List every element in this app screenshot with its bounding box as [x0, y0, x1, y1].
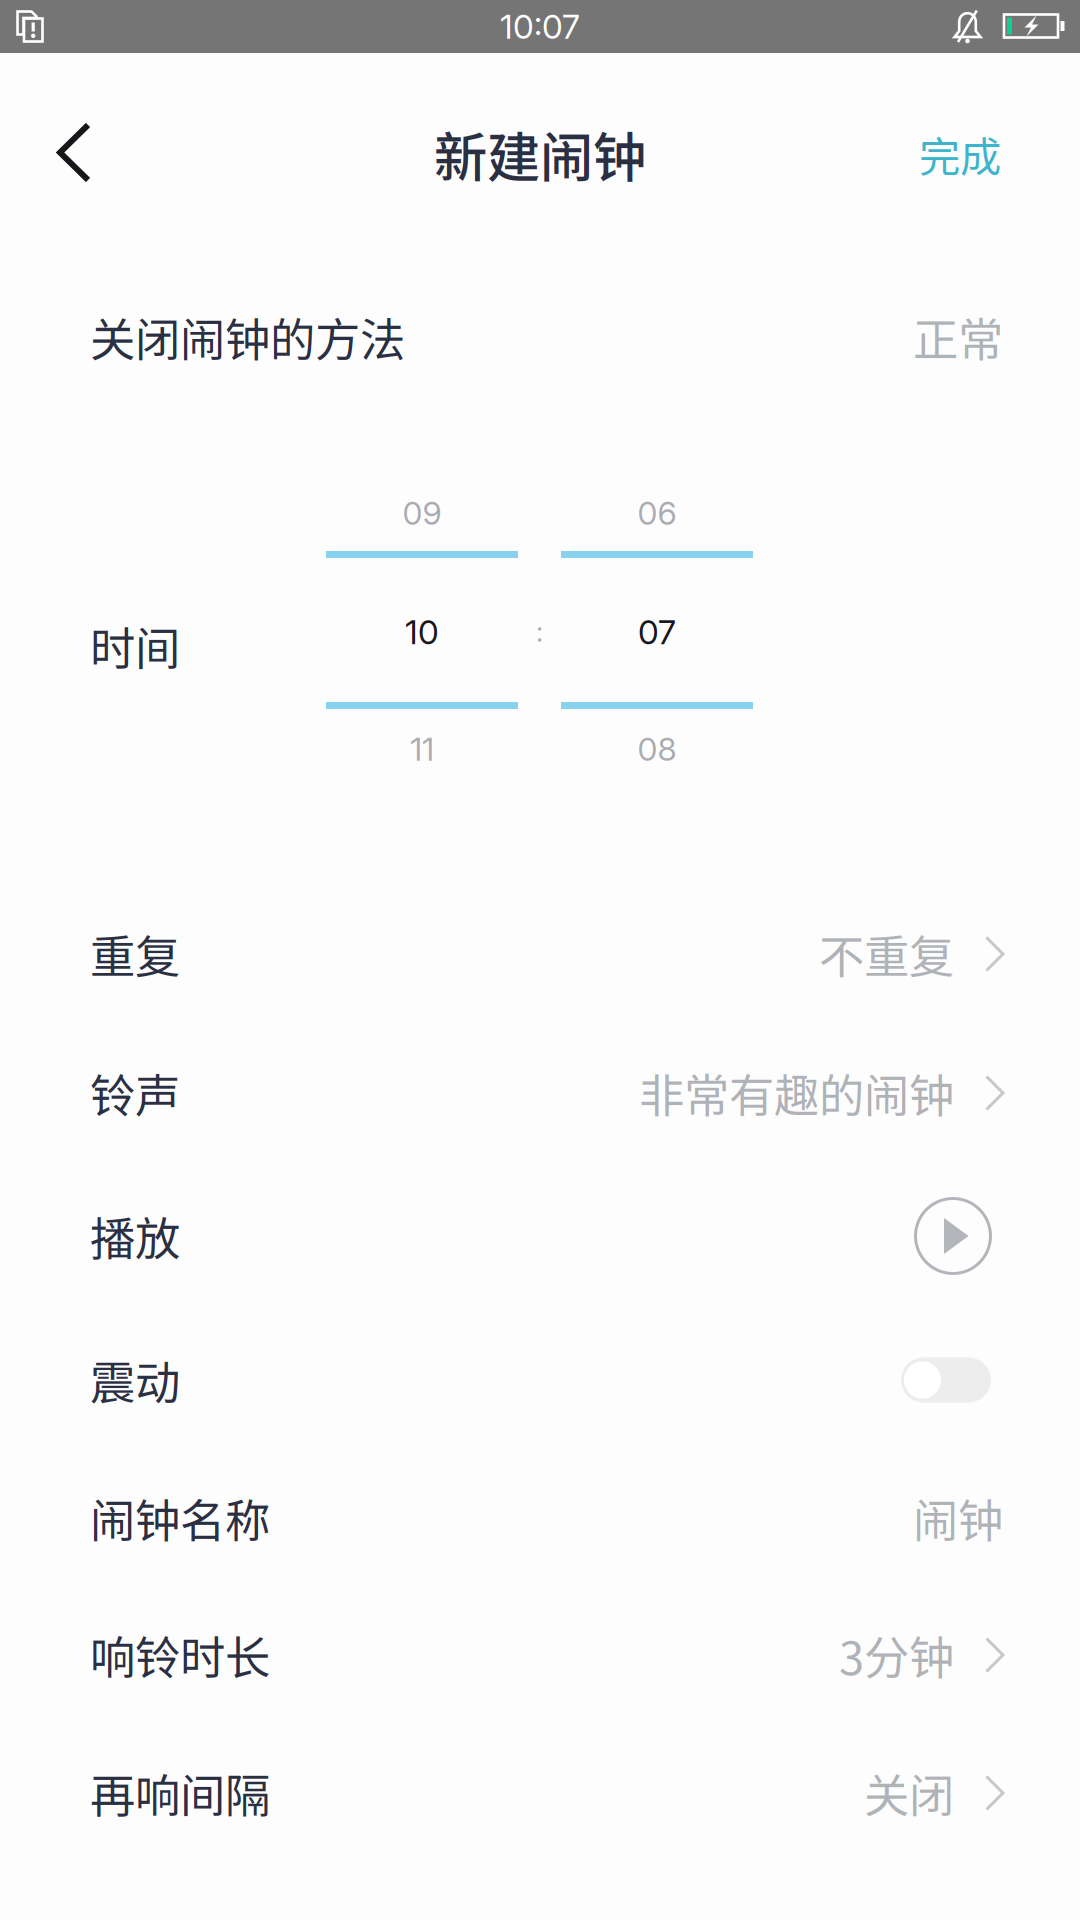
- button[interactable]: 重复: [0, 0, 1080, 138]
- button[interactable]: 响铃时长: [0, 0, 1080, 138]
- staticText: 非常有趣的闹钟: [639, 1060, 954, 1126]
- staticText: 铃声: [90, 1060, 180, 1126]
- staticText: 响铃时长: [90, 1622, 270, 1688]
- staticText: 完成: [919, 124, 1001, 184]
- button[interactable]: Play: [0, 0, 100, 100]
- staticText: 10:07: [500, 6, 580, 47]
- staticText: 播放: [90, 1203, 180, 1269]
- staticText: 关闭: [864, 1760, 954, 1826]
- staticText: 重复: [90, 921, 180, 987]
- button[interactable]: 完成: [0, 0, 200, 120]
- staticText: 11: [410, 730, 434, 768]
- staticText: 06: [637, 494, 676, 532]
- staticText: 正常: [913, 304, 1003, 370]
- staticText: 震动: [90, 1347, 180, 1413]
- button[interactable]: Minute: [0, 0, 192, 300]
- staticText: 3分钟: [839, 1622, 954, 1688]
- button[interactable]: 铃声: [0, 0, 1080, 138]
- staticText: 08: [637, 730, 676, 768]
- staticText: 关闭闹钟的方法: [90, 304, 405, 370]
- staticText: 09: [402, 494, 441, 532]
- button[interactable]: 再响间隔: [0, 0, 1080, 138]
- button[interactable]: Vibration, off: [0, 0, 120, 72]
- button[interactable]: Hour: [0, 0, 192, 300]
- staticText: 闹钟: [913, 1485, 1003, 1551]
- staticText: 闹钟名称: [90, 1485, 270, 1551]
- staticText: 再响间隔: [90, 1760, 270, 1826]
- button[interactable]: 关闭闹钟的方法: [0, 0, 1080, 138]
- staticText: 不重复: [819, 921, 954, 987]
- staticText: :: [536, 616, 543, 648]
- button[interactable]: Back: [0, 0, 148, 124]
- button[interactable]: 闹钟名称: [0, 0, 1080, 138]
- staticText: 10: [405, 612, 439, 652]
- staticText: 新建闹钟: [434, 115, 646, 193]
- staticText: 07: [638, 612, 676, 652]
- staticText: 时间: [90, 613, 180, 679]
